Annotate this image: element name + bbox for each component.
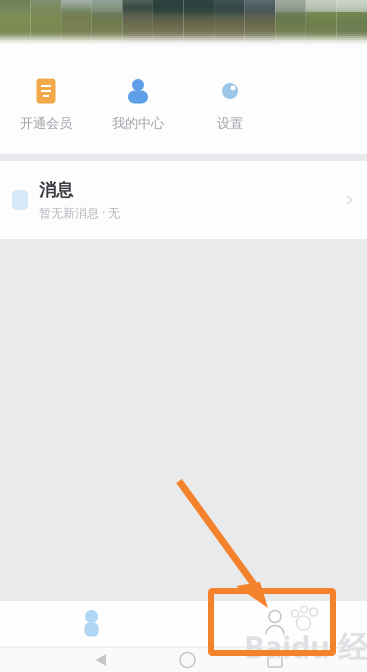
button[interactable]: Profile — [183, 601, 367, 646]
staticText: jingyan.baidu.com — [244, 667, 367, 672]
button[interactable]: Home — [0, 601, 183, 646]
button[interactable]: 消息 — [0, 161, 367, 239]
staticText: Baidu 经验 — [244, 626, 367, 667]
staticText: 消息 — [39, 179, 73, 201]
staticText: 我的中心 — [112, 115, 164, 131]
button[interactable]: 设置 — [184, 46, 276, 154]
button[interactable]: 开通会员 — [0, 46, 92, 154]
staticText: 暂无新消息 · 无 — [39, 205, 120, 221]
staticText: 设置 — [217, 115, 243, 131]
button[interactable]: 我的中心 — [92, 46, 184, 154]
staticText: 开通会员 — [20, 115, 72, 131]
